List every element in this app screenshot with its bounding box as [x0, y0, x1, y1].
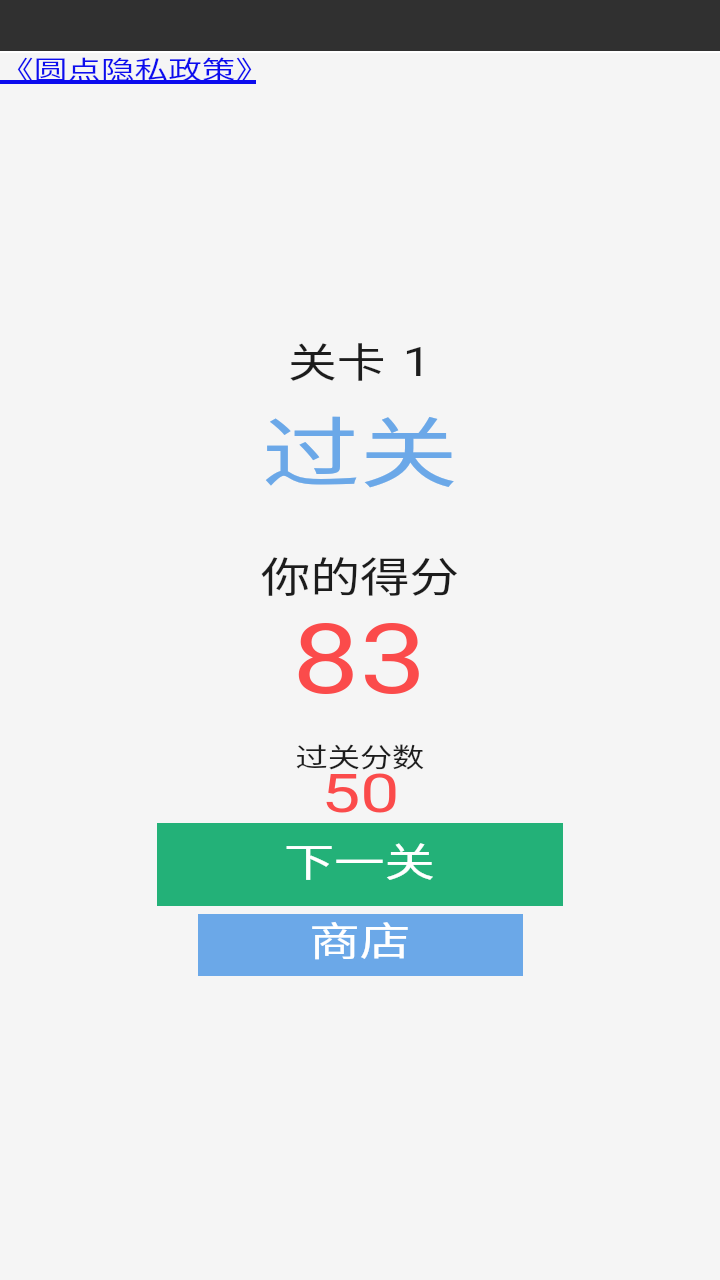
staticText: 你的得分: [261, 544, 459, 603]
staticText: 83: [292, 603, 428, 717]
staticText: 《圆点隐私政策》: [0, 50, 270, 86]
button[interactable]: 商店: [198, 914, 523, 976]
button[interactable]: 《圆点隐私政策》: [0, 50, 270, 86]
staticText: 1: [403, 338, 432, 386]
staticText: 过关: [262, 393, 458, 503]
staticText: 50: [321, 762, 400, 825]
staticText: 关卡: [288, 331, 386, 389]
staticText: 下一关: [284, 831, 436, 887]
staticText: 过关分数: [295, 737, 426, 775]
button[interactable]: 下一关: [157, 823, 563, 906]
staticText: 商店: [309, 910, 412, 966]
